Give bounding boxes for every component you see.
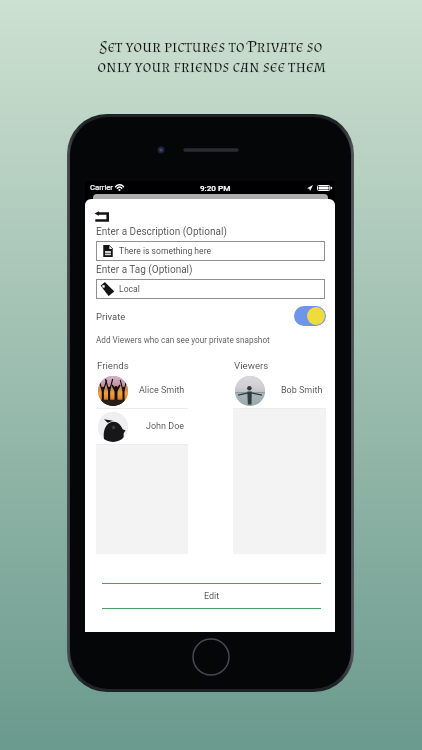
staticText: only your friends can see them	[97, 56, 326, 76]
staticText: Enter a Description (Optional)	[96, 226, 227, 238]
staticText: Alice Smith	[139, 385, 185, 396]
button[interactable]: John Doe	[98, 409, 185, 444]
button[interactable]: Alice Smith	[98, 373, 185, 408]
button[interactable]: Edit	[102, 583, 321, 609]
staticText: Viewers	[234, 360, 269, 371]
staticText: John Doe	[146, 421, 185, 432]
button[interactable]: Private	[96, 306, 326, 326]
staticText: 9:20 PM	[200, 183, 231, 192]
staticText: Bob Smith	[281, 385, 323, 396]
staticText: Edit	[204, 591, 220, 602]
staticText: Add Viewers who can see your private sna…	[96, 335, 270, 345]
button[interactable]: Bob Smith	[235, 373, 323, 408]
staticText: Carrier	[90, 183, 113, 192]
button[interactable]: There is something here	[101, 241, 325, 261]
button[interactable]: Local	[101, 279, 325, 299]
staticText: There is something here	[119, 246, 212, 256]
staticText: Set your pictures to Private so	[99, 36, 323, 56]
staticText: Enter a Tag (Optional)	[96, 264, 193, 276]
button[interactable]: Back	[95, 211, 110, 223]
staticText: Private	[96, 311, 126, 322]
staticText: Friends	[97, 360, 129, 371]
staticText: Local	[119, 284, 140, 294]
